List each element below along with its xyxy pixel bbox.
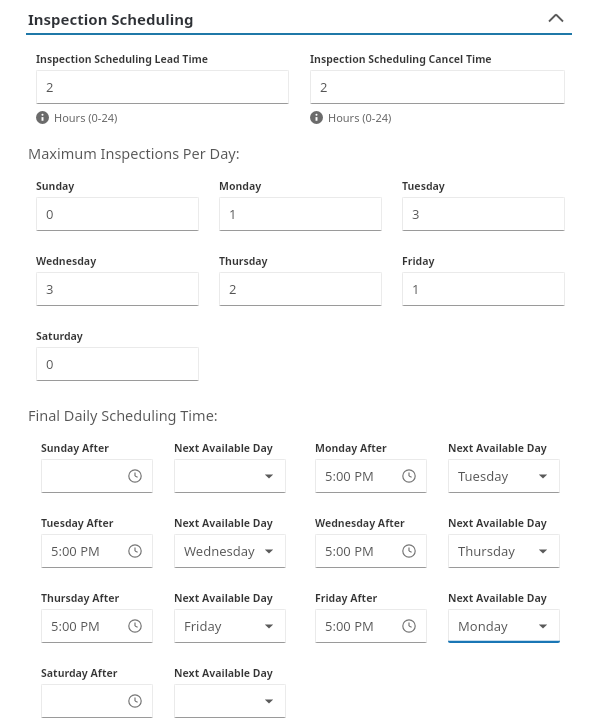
button[interactable]: 3 <box>36 272 199 306</box>
staticText: 5:00 PM <box>325 467 374 485</box>
button[interactable]: Wednesday <box>174 534 286 568</box>
button[interactable]: 2 <box>310 70 565 104</box>
staticText: Next Available Day <box>174 666 273 680</box>
staticText: Friday <box>184 617 222 635</box>
button[interactable]: Select day <box>174 459 286 493</box>
button[interactable]: 3 <box>402 197 565 231</box>
button[interactable]: 2 <box>36 70 289 104</box>
button[interactable]: 5:00 PM <box>315 534 427 568</box>
staticText: 1 <box>229 205 237 223</box>
button[interactable]: Select time <box>41 684 153 718</box>
staticText: Wednesday <box>36 254 97 268</box>
button[interactable]: 0 <box>36 197 199 231</box>
staticText: Maximum Inspections Per Day: <box>28 143 240 163</box>
staticText: 1 <box>412 280 420 298</box>
staticText: Sunday <box>36 179 75 193</box>
staticText: Friday <box>402 254 435 268</box>
staticText: 5:00 PM <box>51 617 100 635</box>
staticText: Next Available Day <box>174 441 273 455</box>
button[interactable]: 1 <box>402 272 565 306</box>
staticText: Monday After <box>315 441 387 455</box>
staticText: Next Available Day <box>174 516 273 530</box>
staticText: Tuesday After <box>41 516 114 530</box>
staticText: Next Available Day <box>174 591 273 605</box>
staticText: Monday <box>458 617 508 635</box>
staticText: Monday <box>219 179 262 193</box>
button[interactable]: 2 <box>219 272 382 306</box>
staticText: 0 <box>46 355 54 373</box>
staticText: Thursday <box>458 542 515 560</box>
staticText: 3 <box>46 280 54 298</box>
staticText: 2 <box>320 78 328 96</box>
staticText: Next Available Day <box>448 441 547 455</box>
staticText: Tuesday <box>458 467 509 485</box>
button[interactable]: Monday <box>448 609 560 643</box>
button[interactable]: Select day <box>174 684 286 718</box>
button[interactable]: 1 <box>219 197 382 231</box>
button[interactable]: Friday <box>174 609 286 643</box>
staticText: Final Daily Scheduling Time: <box>28 405 218 425</box>
staticText: Wednesday After <box>315 516 405 530</box>
staticText: Saturday <box>36 329 83 343</box>
staticText: Saturday After <box>41 666 118 680</box>
staticText: 5:00 PM <box>51 542 100 560</box>
staticText: Hours (0-24) <box>54 110 118 125</box>
button[interactable]: 5:00 PM <box>41 609 153 643</box>
button[interactable]: Collapse section <box>538 2 574 32</box>
staticText: Next Available Day <box>448 591 547 605</box>
staticText: 5:00 PM <box>325 542 374 560</box>
button[interactable]: 5:00 PM <box>315 459 427 493</box>
staticText: Hours (0-24) <box>328 110 392 125</box>
staticText: Inspection Scheduling <box>28 9 194 29</box>
staticText: Thursday <box>219 254 268 268</box>
button[interactable]: 5:00 PM <box>41 534 153 568</box>
staticText: Next Available Day <box>448 516 547 530</box>
staticText: 5:00 PM <box>325 617 374 635</box>
staticText: Wednesday <box>184 542 255 560</box>
button[interactable]: 0 <box>36 347 199 381</box>
staticText: 0 <box>46 205 54 223</box>
button[interactable]: Select time <box>41 459 153 493</box>
staticText: Friday After <box>315 591 378 605</box>
staticText: Thursday After <box>41 591 120 605</box>
staticText: 2 <box>46 78 54 96</box>
staticText: Inspection Scheduling Lead Time <box>36 52 209 66</box>
staticText: Sunday After <box>41 441 109 455</box>
button[interactable]: Tuesday <box>448 459 560 493</box>
staticText: Tuesday <box>402 179 445 193</box>
button[interactable]: 5:00 PM <box>315 609 427 643</box>
button[interactable]: Thursday <box>448 534 560 568</box>
staticText: 2 <box>229 280 237 298</box>
staticText: Inspection Scheduling Cancel Time <box>310 52 492 66</box>
staticText: 3 <box>412 205 420 223</box>
